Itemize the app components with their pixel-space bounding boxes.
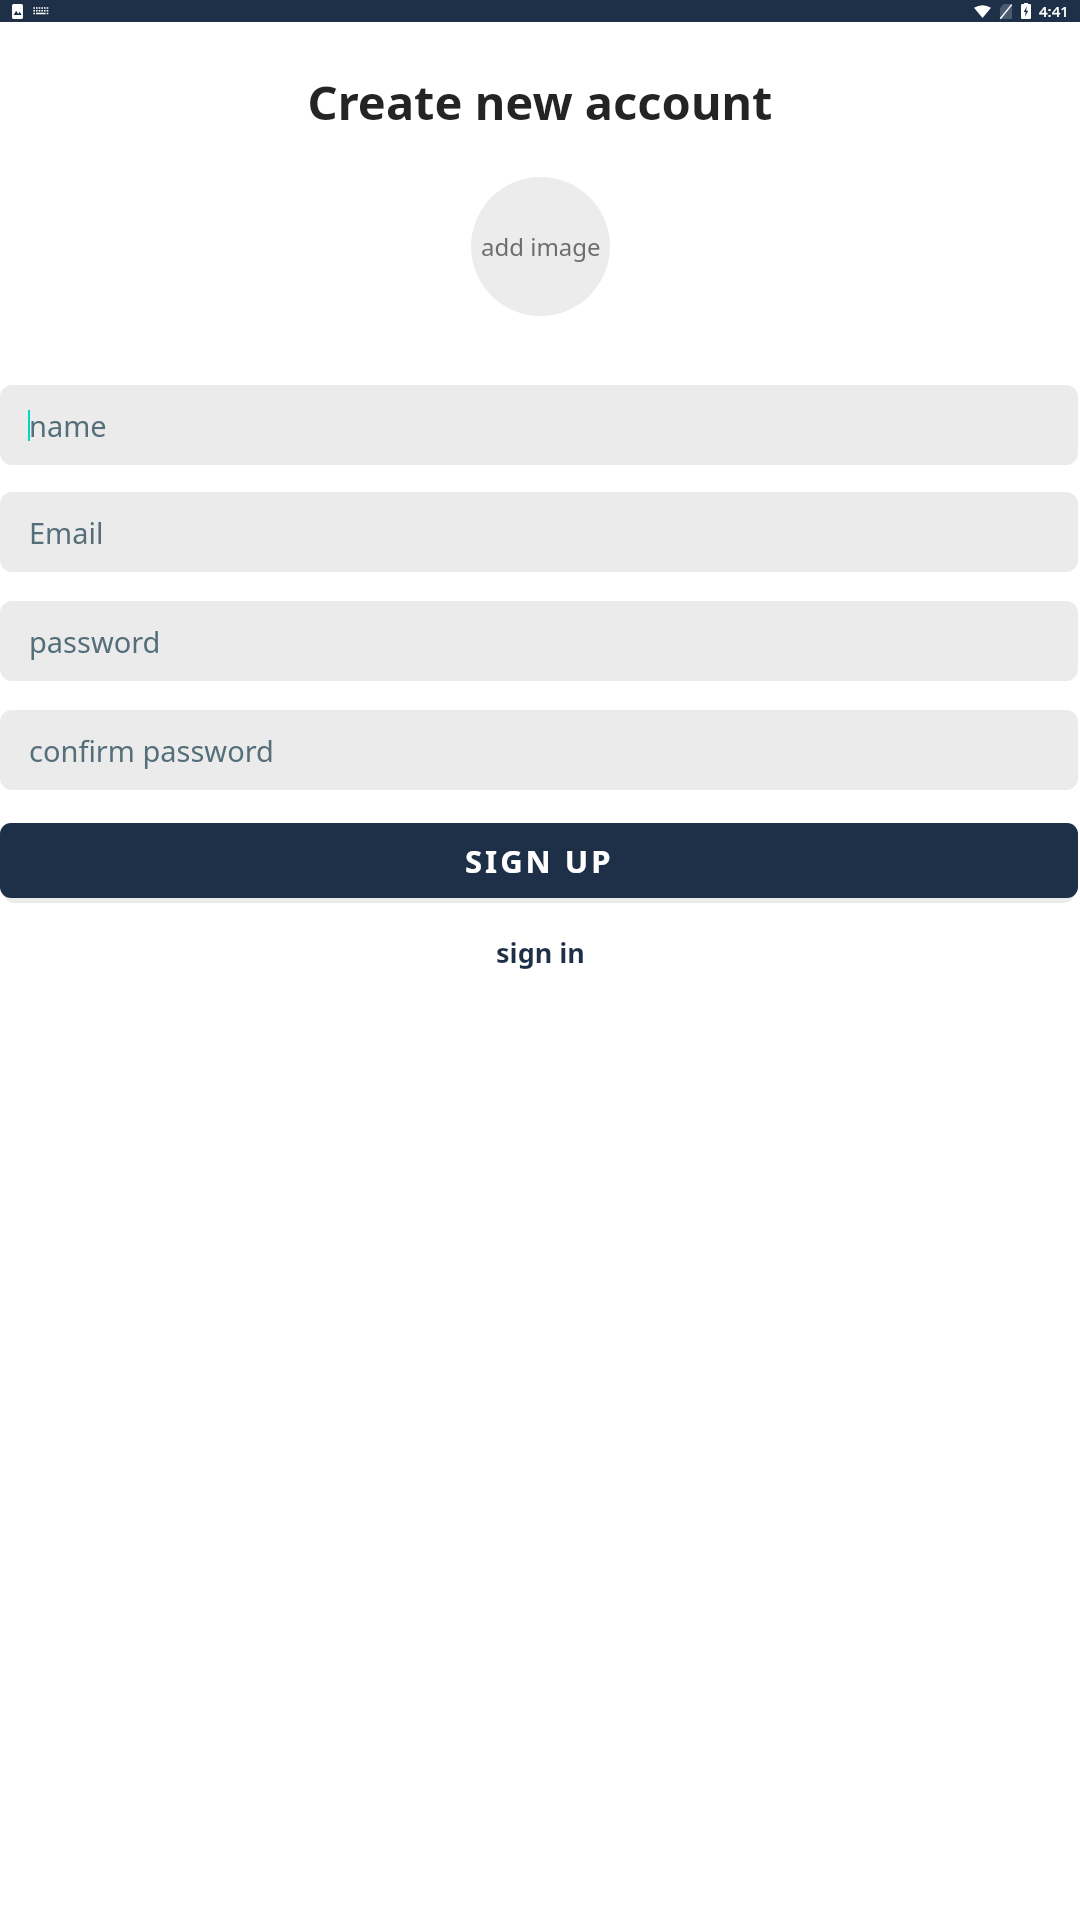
staticText: confirm password <box>29 731 274 770</box>
staticText: Email <box>29 513 104 552</box>
button[interactable]: SIGN UP <box>0 823 1078 898</box>
button[interactable]: confirm password <box>0 710 1078 790</box>
staticText: SIGN UP <box>465 840 614 882</box>
button[interactable]: Email <box>0 492 1078 572</box>
button[interactable]: add image <box>471 177 610 316</box>
staticText: 4:41 <box>1039 1 1069 21</box>
button[interactable]: sign in <box>472 926 609 979</box>
button[interactable]: password <box>0 601 1078 681</box>
staticText: sign in <box>496 934 585 971</box>
staticText: Create new account <box>0 70 1080 134</box>
staticText: add image <box>481 230 601 263</box>
button[interactable]: name <box>0 385 1078 465</box>
staticText: name <box>29 406 107 445</box>
staticText: password <box>29 622 161 661</box>
